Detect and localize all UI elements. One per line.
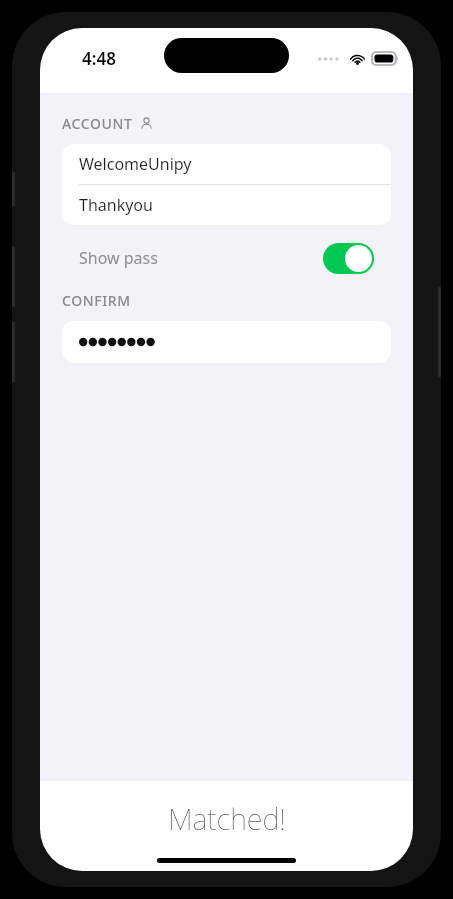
other: Show password toggle (323, 243, 374, 274)
button[interactable]: Show pass (62, 237, 391, 279)
staticText: Matched! (168, 799, 286, 838)
button[interactable]: WelcomeUnipy (62, 144, 391, 184)
staticText: Thankyou (79, 194, 153, 216)
staticText: ACCOUNT (62, 114, 133, 133)
button[interactable] (62, 321, 391, 363)
staticText: 4:48 (82, 47, 116, 70)
button[interactable]: Thankyou (62, 185, 391, 225)
staticText: Show pass (79, 247, 158, 269)
staticText: CONFIRM (62, 291, 131, 310)
staticText: WelcomeUnipy (79, 153, 192, 175)
